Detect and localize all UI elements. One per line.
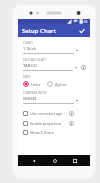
button[interactable]: Recents [69, 155, 80, 166]
button[interactable]: Back [28, 155, 39, 166]
staticText: Ag/cm [55, 82, 67, 87]
button[interactable]: Help [68, 120, 74, 126]
staticText: DAYS [23, 75, 31, 79]
staticText: TABOO [23, 63, 37, 69]
staticText: NIKKEI [23, 96, 37, 102]
button[interactable]: Units [23, 81, 41, 87]
button[interactable]: Show Z-Score [23, 130, 86, 135]
staticText: 1-Stick [23, 46, 36, 52]
staticText: CHART [23, 41, 33, 45]
staticText: Units [31, 82, 41, 87]
staticText: 1:10 [81, 20, 88, 24]
button[interactable]: 1-Stick [23, 46, 86, 54]
staticText: COMPARE WITH [23, 91, 47, 95]
button[interactable]: Done [77, 26, 87, 36]
staticText: Setup Chart [22, 27, 56, 35]
staticText: Enable projection [30, 121, 62, 126]
button[interactable]: Help [80, 64, 86, 70]
staticText: Show Z-Score [30, 130, 54, 135]
button[interactable]: Home [49, 155, 60, 166]
button[interactable]: Use corrected age [23, 110, 86, 116]
staticText: SECOND CHART [23, 58, 47, 62]
button[interactable]: Help [68, 110, 74, 116]
button[interactable]: Enable projection [23, 120, 86, 126]
button[interactable]: Ag/cm [47, 81, 67, 87]
staticText: Use corrected age [30, 111, 63, 116]
button[interactable]: TABOO [23, 63, 86, 71]
button[interactable]: NIKKEI [23, 96, 86, 104]
